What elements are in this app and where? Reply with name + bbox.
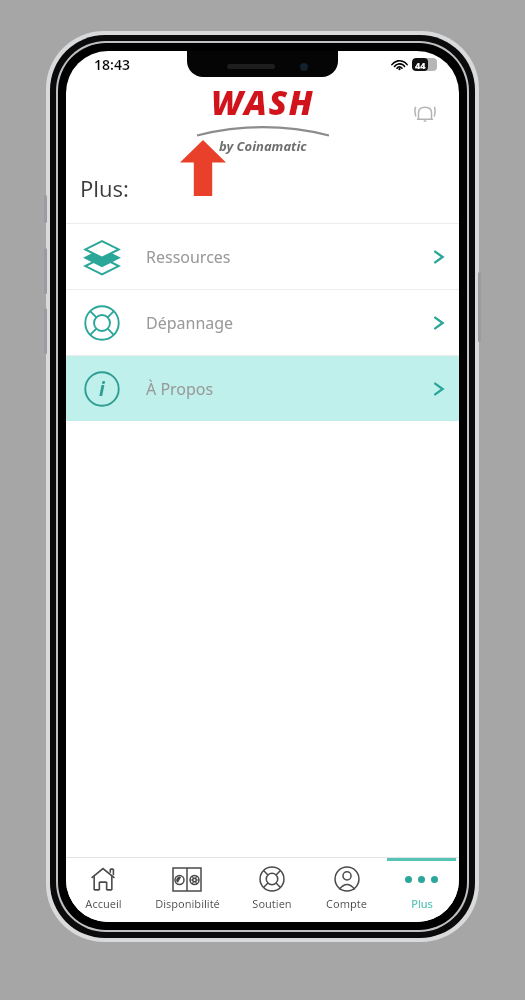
button[interactable]: Compte <box>309 858 384 922</box>
staticText: Plus: <box>80 173 130 203</box>
button[interactable]: Ressources <box>66 224 459 289</box>
button[interactable]: Dépannage <box>66 290 459 355</box>
staticText: Dépannage <box>146 312 234 334</box>
staticText: Accueil <box>85 896 122 911</box>
staticText: Disponibilité <box>155 896 220 911</box>
staticText: WASH <box>211 79 315 125</box>
staticText: 18:43 <box>94 55 130 74</box>
button[interactable]: Accueil <box>66 858 140 922</box>
staticText: by Coinamatic <box>219 137 307 155</box>
button[interactable]: Disponibilité <box>140 858 234 922</box>
button[interactable]: Notifications <box>403 93 447 137</box>
staticText: Plus <box>411 896 433 911</box>
button[interactable]: Plus <box>384 858 459 922</box>
staticText: i <box>99 376 105 402</box>
button[interactable]: Soutien <box>234 858 309 922</box>
staticText: Compte <box>326 896 367 911</box>
staticText: Ressources <box>146 246 231 268</box>
staticText: À Propos <box>146 378 214 400</box>
staticText: Soutien <box>252 896 292 911</box>
staticText: 44 <box>415 59 426 71</box>
button[interactable]: i <box>66 356 459 421</box>
